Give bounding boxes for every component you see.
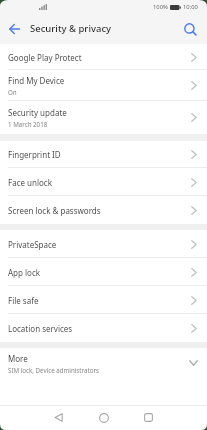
button[interactable]: Security update bbox=[0, 101, 207, 134]
button[interactable] bbox=[6, 21, 22, 37]
button[interactable] bbox=[181, 20, 199, 38]
staticText: 100% bbox=[153, 3, 168, 11]
button[interactable] bbox=[0, 405, 69, 430]
button[interactable]: Location services bbox=[0, 314, 207, 342]
staticText: 1 March 2018 bbox=[8, 120, 48, 128]
button[interactable]: Google Play Protect bbox=[0, 44, 207, 70]
staticText: 10:00 bbox=[183, 3, 198, 11]
staticText: App lock bbox=[8, 267, 41, 278]
button[interactable]: App lock bbox=[0, 258, 207, 286]
staticText: PrivateSpace bbox=[8, 239, 57, 250]
button[interactable]: File safe bbox=[0, 286, 207, 314]
staticText: File safe bbox=[8, 295, 39, 306]
staticText: Security & privacy bbox=[30, 22, 112, 35]
button[interactable]: PrivateSpace bbox=[0, 230, 207, 258]
staticText: Fingerprint ID bbox=[8, 149, 61, 160]
staticText: Google Play Protect bbox=[8, 52, 82, 63]
button[interactable]: Fingerprint ID bbox=[0, 141, 207, 168]
staticText: Location services bbox=[8, 323, 73, 334]
staticText: SIM lock, Device administrators bbox=[8, 366, 99, 374]
button[interactable]: More bbox=[0, 348, 207, 378]
button[interactable] bbox=[138, 405, 207, 430]
staticText: Find My Device bbox=[8, 75, 65, 86]
staticText: Security update bbox=[8, 107, 67, 118]
staticText: Screen lock & passwords bbox=[8, 205, 101, 216]
button[interactable]: Find My Device bbox=[0, 70, 207, 101]
button[interactable] bbox=[69, 405, 138, 430]
button[interactable]: Screen lock & passwords bbox=[0, 196, 207, 224]
button[interactable]: Face unlock bbox=[0, 168, 207, 196]
staticText: On bbox=[8, 88, 17, 96]
staticText: More bbox=[8, 353, 28, 364]
staticText: Face unlock bbox=[8, 177, 52, 188]
